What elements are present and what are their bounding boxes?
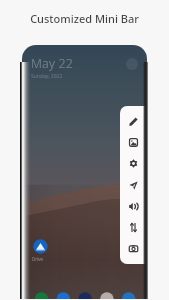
button[interactable]: Navigate — [121, 179, 146, 192]
button[interactable]: Settings — [121, 157, 146, 170]
button[interactable]: Volume — [121, 200, 146, 213]
button[interactable]: Edit — [121, 115, 146, 128]
staticText: Sunday, 2022 — [31, 73, 63, 80]
staticText: May 22 — [31, 55, 74, 72]
button[interactable]: Gallery — [121, 136, 146, 149]
button[interactable]: Camera — [121, 242, 146, 255]
staticText: Customized Mini Bar — [0, 11, 169, 26]
button[interactable]: Swap — [121, 221, 146, 234]
staticText: Drive — [32, 256, 44, 262]
